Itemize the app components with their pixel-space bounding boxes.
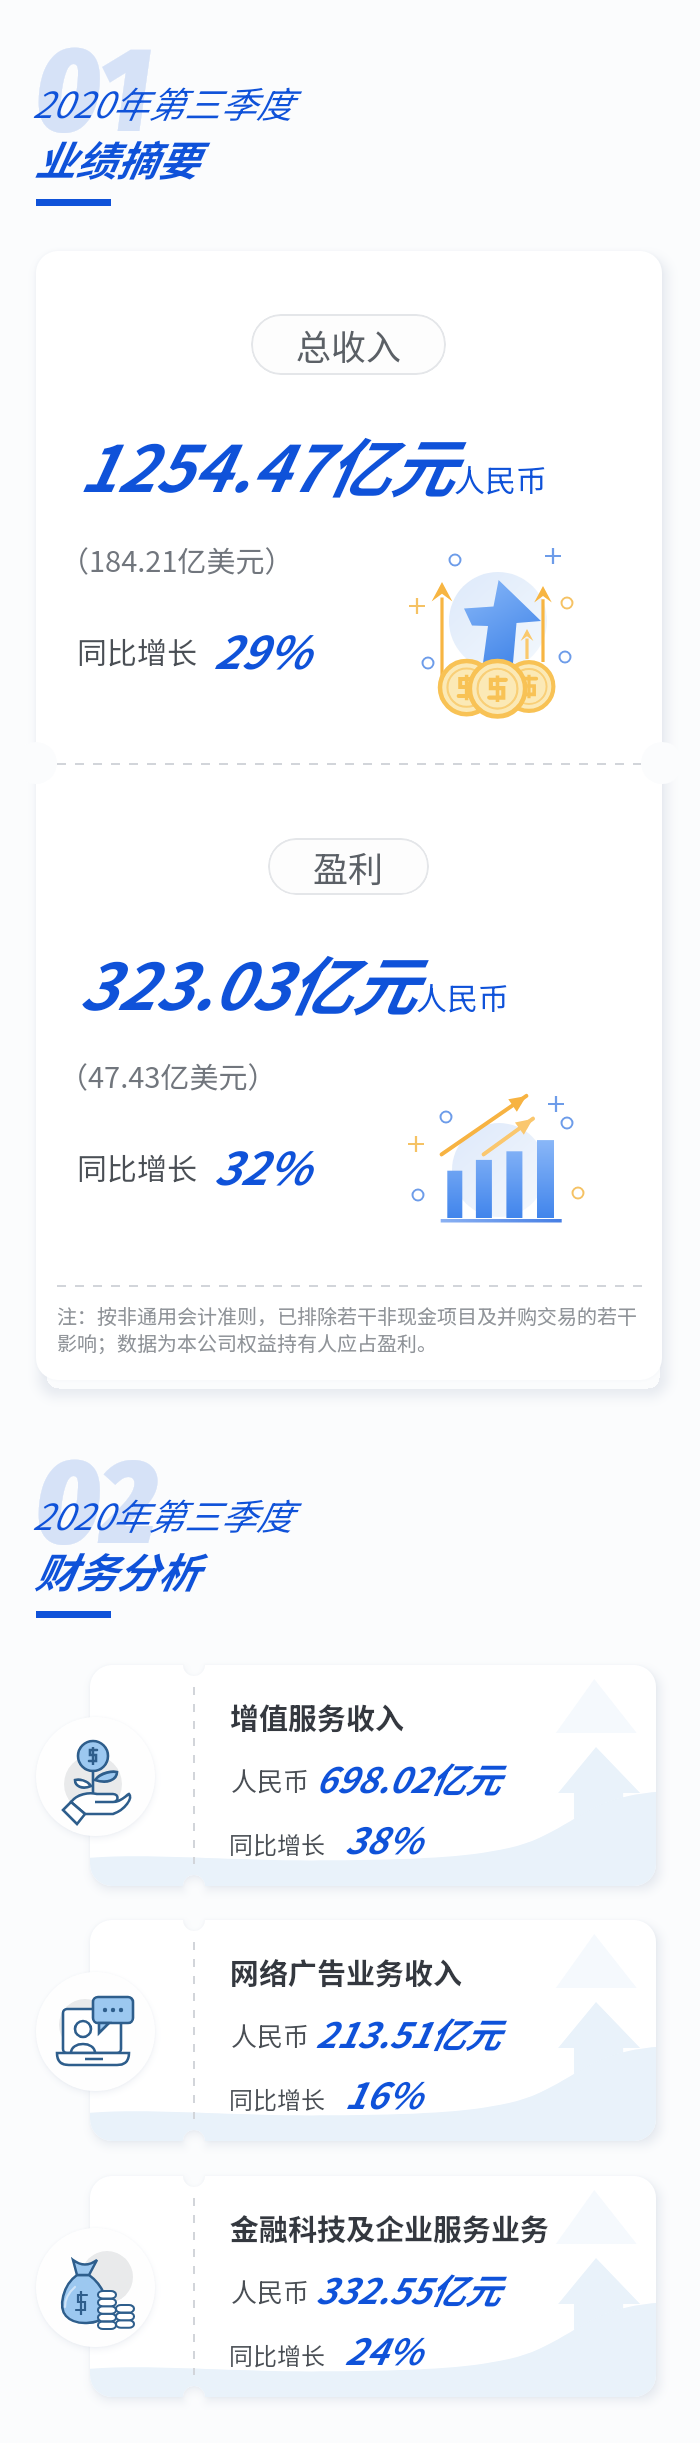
- staticText: 16%: [344, 2067, 422, 2119]
- button[interactable]: 盈利: [268, 838, 429, 895]
- staticText: 32%: [213, 1133, 310, 1198]
- button[interactable]: 金融科技及企业服务业务: [90, 2176, 656, 2397]
- other: Business segment icon: [36, 1972, 155, 2091]
- staticText: 332.55亿元: [315, 2263, 500, 2314]
- staticText: 网络广告业务收入: [230, 1950, 463, 1992]
- staticText: 人民币: [231, 2272, 315, 2310]
- staticText: 同比增长: [229, 2337, 325, 2372]
- staticText: 人民币: [231, 1761, 315, 1799]
- staticText: 01: [35, 19, 152, 163]
- staticText: 人民币: [454, 456, 547, 501]
- other: Business segment icon: [36, 1717, 155, 1836]
- staticText: 人民币: [416, 974, 509, 1019]
- staticText: 财务分析: [34, 1540, 198, 1599]
- staticText: 人民币: [231, 2016, 315, 2054]
- staticText: 1254.47亿元: [78, 418, 454, 511]
- staticText: 同比增长: [229, 2081, 325, 2116]
- staticText: 同比增长: [77, 629, 197, 672]
- staticText: （184.21亿美元）: [60, 538, 294, 580]
- staticText: 增值服务收入: [230, 1695, 405, 1737]
- staticText: （47.43亿美元）: [59, 1054, 277, 1096]
- button[interactable]: 增值服务收入: [90, 1665, 656, 1886]
- other: Business segment icon: [36, 2228, 155, 2347]
- staticText: 注：按非通用会计准则，已排除若干非现金项目及并购交易的若干: [57, 1301, 637, 1330]
- staticText: 29%: [213, 617, 310, 682]
- staticText: 24%: [344, 2323, 422, 2375]
- staticText: 影响；数据为本公司权益持有人应占盈利。: [57, 1328, 437, 1357]
- staticText: 213.51亿元: [315, 2007, 500, 2058]
- staticText: 盈利: [313, 841, 384, 892]
- staticText: 698.02亿元: [315, 1752, 500, 1803]
- button[interactable]: 总收入: [251, 314, 446, 375]
- staticText: 业绩摘要: [34, 128, 198, 187]
- button[interactable]: 网络广告业务收入: [90, 1920, 656, 2141]
- staticText: 总收入: [296, 319, 402, 370]
- staticText: 金融科技及企业服务业务: [230, 2206, 550, 2248]
- staticText: 2020年第三季度: [32, 76, 292, 128]
- staticText: 2020年第三季度: [32, 1488, 292, 1540]
- staticText: 38%: [344, 1812, 422, 1864]
- staticText: 02: [35, 1431, 157, 1575]
- staticText: 323.03亿元: [78, 936, 416, 1029]
- staticText: 同比增长: [229, 1826, 325, 1861]
- staticText: 同比增长: [77, 1145, 197, 1188]
